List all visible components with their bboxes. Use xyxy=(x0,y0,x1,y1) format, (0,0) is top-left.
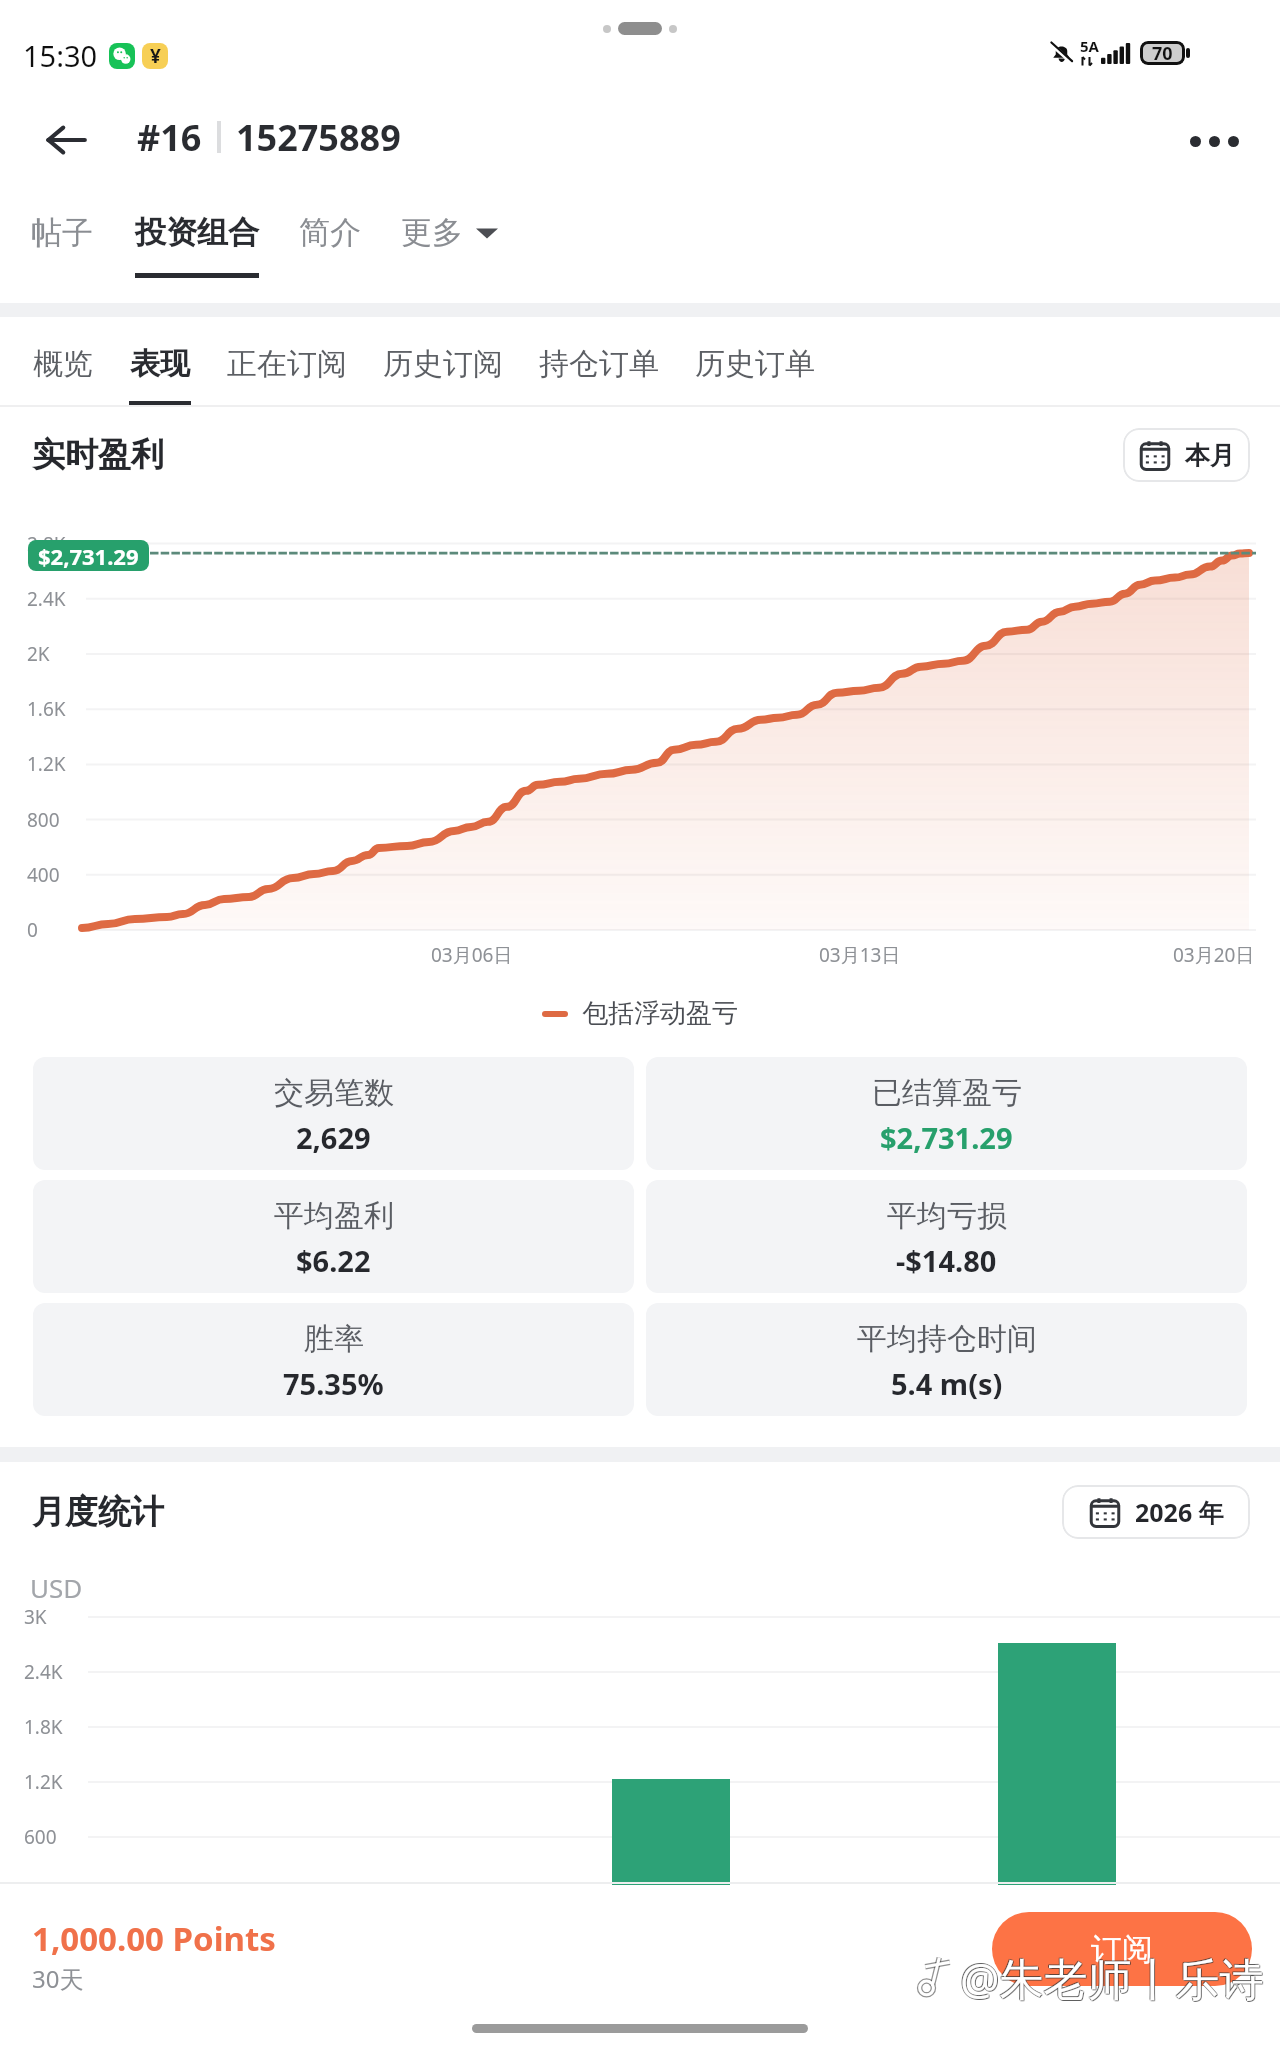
button[interactable]: 正在订阅 xyxy=(227,339,347,401)
staticText: 1.6K xyxy=(27,696,66,722)
button[interactable]: 更多选项 xyxy=(1183,110,1245,172)
staticText: 5.4 m(s) xyxy=(891,1364,1003,1403)
staticText: 2,629 xyxy=(296,1118,371,1157)
staticText: 15275889 xyxy=(236,113,401,162)
staticText: 400 xyxy=(27,862,60,888)
button[interactable]: 返回 xyxy=(36,110,96,170)
staticText: 帖子 xyxy=(31,213,93,252)
staticText: 600 xyxy=(24,1824,57,1850)
staticText: 1.2K xyxy=(27,751,66,777)
staticText: 1.2K xyxy=(24,1769,63,1795)
staticText: 胜率 xyxy=(304,1320,364,1358)
staticText: 订阅 xyxy=(1091,1930,1153,1969)
button[interactable]: 帖子 xyxy=(31,207,93,273)
staticText: 30天 xyxy=(32,1962,84,1995)
staticText: 表现 xyxy=(130,345,190,383)
button[interactable]: 胜率 xyxy=(33,1303,634,1416)
button[interactable]: 平均持仓时间 xyxy=(646,1303,1247,1416)
staticText: 15:30 xyxy=(23,36,98,75)
staticText: 正在订阅 xyxy=(227,345,347,383)
staticText: 实时盈利 xyxy=(32,434,164,476)
staticText: 历史订单 xyxy=(695,345,815,383)
staticText: 2026 年 xyxy=(1135,1495,1224,1529)
staticText: 0 xyxy=(27,917,38,943)
staticText: $2,731.29 xyxy=(880,1118,1013,1157)
button[interactable]: 投资组合 xyxy=(135,207,259,278)
button[interactable]: 表现 xyxy=(129,339,191,406)
staticText: 平均持仓时间 xyxy=(857,1320,1037,1358)
staticText: #16 xyxy=(137,113,202,162)
staticText: 更多 xyxy=(401,213,463,252)
staticText: 本月 xyxy=(1185,440,1235,471)
staticText: $6.22 xyxy=(296,1241,371,1280)
button[interactable]: 历史订阅 xyxy=(383,339,503,401)
button[interactable]: 平均盈利 xyxy=(33,1180,634,1293)
staticText: 2.4K xyxy=(27,586,66,612)
staticText: 平均亏损 xyxy=(887,1197,1007,1235)
button[interactable]: 更多 xyxy=(401,207,498,257)
staticText: 03月20日 xyxy=(1173,942,1255,968)
staticText: USD xyxy=(30,1570,83,1605)
staticText: 2.4K xyxy=(24,1659,63,1685)
staticText: 03月13日 xyxy=(819,942,901,968)
staticText: 03月06日 xyxy=(431,942,513,968)
staticText: @朱老师丨乐诗 xyxy=(959,1947,1263,2007)
staticText: 交易笔数 xyxy=(274,1074,394,1112)
staticText: 5A xyxy=(1080,36,1099,56)
staticText: 简介 xyxy=(299,213,361,252)
staticText: 包括浮动盈亏 xyxy=(582,997,738,1030)
button[interactable]: 本月 xyxy=(1123,428,1250,482)
staticText: 800 xyxy=(27,807,60,833)
staticText: 月度统计 xyxy=(32,1491,164,1533)
staticText: @朱老师丨乐诗 xyxy=(960,1947,1264,2007)
staticText: $2,731.29 xyxy=(38,541,139,571)
button[interactable]: 2026 年 xyxy=(1062,1485,1250,1539)
staticText: 已结算盈亏 xyxy=(872,1074,1022,1112)
staticText: 3K xyxy=(24,1604,47,1630)
staticText: 2K xyxy=(27,641,50,667)
button[interactable]: 持仓订单 xyxy=(539,339,659,401)
staticText: 平均盈利 xyxy=(274,1197,394,1235)
button[interactable]: 已结算盈亏 xyxy=(646,1057,1247,1170)
button[interactable]: 交易笔数 xyxy=(33,1057,634,1170)
staticText: 持仓订单 xyxy=(539,345,659,383)
button[interactable]: 简介 xyxy=(299,207,361,273)
button[interactable]: 平均亏损 xyxy=(646,1180,1247,1293)
staticText: @朱老师丨乐诗 xyxy=(960,1949,1264,2009)
staticText: 概览 xyxy=(33,345,93,383)
staticText: -$14.80 xyxy=(896,1241,997,1280)
button[interactable]: 历史订单 xyxy=(695,339,815,401)
staticText: 1,000.00 Points xyxy=(32,1916,276,1961)
staticText: 历史订阅 xyxy=(383,345,503,383)
staticText: 投资组合 xyxy=(135,213,259,252)
staticText: 75.35% xyxy=(283,1364,384,1403)
button[interactable]: 订阅 xyxy=(992,1912,1252,1986)
staticText: 1.8K xyxy=(24,1714,63,1740)
staticText: @朱老师丨乐诗 xyxy=(961,1948,1265,2008)
staticText: @朱老师丨乐诗 xyxy=(959,1948,1263,2008)
button[interactable]: 概览 xyxy=(33,339,93,401)
staticText: 70 xyxy=(1152,41,1173,65)
staticText: @朱老师丨乐诗 xyxy=(960,1948,1264,2008)
staticText: ¥ xyxy=(150,43,161,69)
staticText: @朱老师丨乐诗 xyxy=(961,1949,1265,2009)
staticText: 2.8K xyxy=(27,531,66,557)
